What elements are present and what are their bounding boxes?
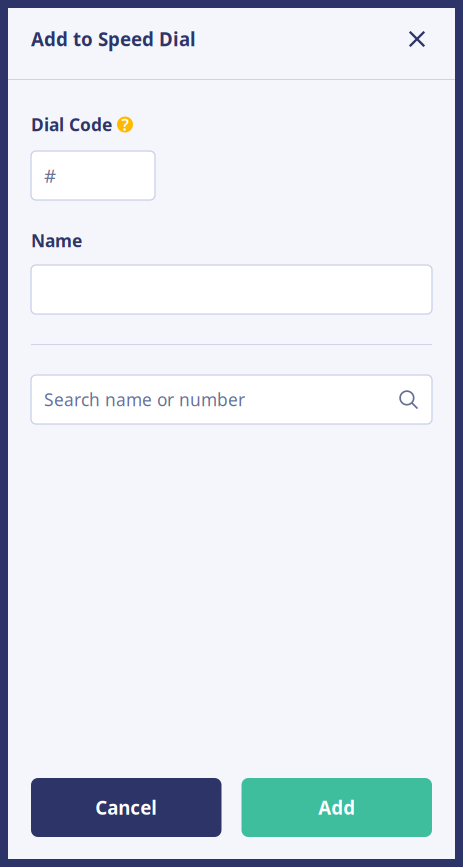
- button[interactable]: Name: [31, 265, 432, 314]
- button[interactable]: Help about dial codes: [117, 116, 133, 132]
- staticText: Search name or number: [44, 388, 245, 411]
- staticText: Cancel: [95, 795, 157, 820]
- button[interactable]: Search name or number: [31, 375, 432, 424]
- button[interactable]: Add: [241, 778, 432, 837]
- staticText: Name: [31, 229, 82, 252]
- staticText: Add to Speed Dial: [31, 27, 196, 51]
- staticText: ?: [121, 114, 128, 135]
- button[interactable]: #: [31, 151, 155, 200]
- button[interactable]: Cancel: [31, 778, 221, 837]
- staticText: #: [44, 163, 56, 188]
- button[interactable]: Close: [397, 19, 437, 59]
- staticText: Dial Code: [31, 113, 112, 136]
- staticText: Add: [318, 795, 355, 820]
